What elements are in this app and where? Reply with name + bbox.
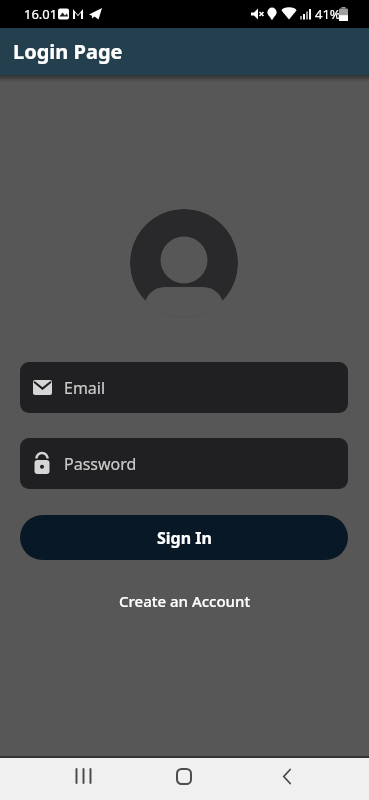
- staticText: 16.01: [24, 5, 58, 23]
- button[interactable]: Email: [20, 362, 348, 413]
- button[interactable]: [267, 756, 307, 796]
- button[interactable]: [63, 756, 103, 796]
- staticText: Sign In: [157, 527, 212, 549]
- button[interactable]: Create an Account: [119, 591, 251, 611]
- button[interactable]: Sign In: [20, 515, 348, 560]
- staticText: 41%: [315, 5, 341, 23]
- button[interactable]: [164, 756, 204, 796]
- staticText: Password: [64, 453, 137, 475]
- staticText: Email: [64, 377, 106, 399]
- button[interactable]: Password: [20, 438, 348, 489]
- staticText: Login Page: [13, 38, 123, 65]
